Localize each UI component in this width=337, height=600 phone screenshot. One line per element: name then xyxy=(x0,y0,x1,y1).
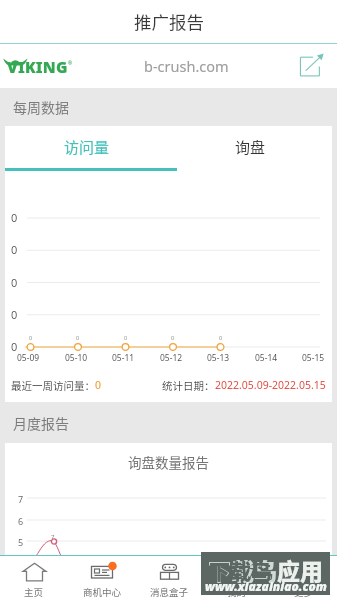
staticText: 访问量 xyxy=(64,136,110,158)
button[interactable]: 访问量 xyxy=(5,126,168,168)
staticText: 0 xyxy=(11,339,18,354)
staticText: 应用 xyxy=(277,553,323,586)
staticText: 每周数据 xyxy=(13,97,69,117)
staticText: www.xlazalniao.com xyxy=(205,578,327,594)
button[interactable]: 更多 xyxy=(270,556,337,600)
staticText: 最近一周访问量： xyxy=(11,378,95,393)
staticText: 05-13 xyxy=(207,352,230,364)
staticText: 05-15 xyxy=(302,352,325,364)
staticText: 下载鸟 xyxy=(209,555,272,585)
staticText: 6 xyxy=(18,515,24,527)
button[interactable]: 消息盒子 xyxy=(136,556,203,600)
staticText: ® xyxy=(68,60,73,67)
staticText: 05-14 xyxy=(255,352,278,364)
staticText: VIKING xyxy=(7,56,68,77)
button[interactable]: Open website xyxy=(300,55,322,77)
staticText: 0 xyxy=(171,334,175,341)
staticText: 2022.05.09-2022.05.15 xyxy=(215,378,326,392)
staticText: 商机中心 xyxy=(83,585,122,599)
staticText: 询盘数量报告 xyxy=(128,452,209,472)
button[interactable]: 主页 xyxy=(0,556,68,600)
staticText: 0 xyxy=(11,307,18,322)
staticText: 0 xyxy=(29,334,33,341)
staticText: 05-12 xyxy=(160,352,183,364)
staticText: 05-11 xyxy=(112,352,135,364)
staticText: 0 xyxy=(11,275,18,290)
button[interactable]: 询盘 xyxy=(168,126,332,168)
staticText: 消息盒子 xyxy=(150,585,189,599)
staticText: 7 xyxy=(51,533,55,541)
staticText: 05-10 xyxy=(65,352,88,364)
button[interactable]: 商机中心 xyxy=(68,556,136,600)
staticText: 0 xyxy=(76,334,80,341)
staticText: 推广报告 xyxy=(134,9,204,34)
staticText: 下载鸟 xyxy=(208,553,277,586)
staticText: 0 xyxy=(124,334,128,341)
staticText: 询盘 xyxy=(235,136,266,158)
staticText: 7 xyxy=(18,493,24,505)
staticText: 主页 xyxy=(24,585,44,599)
staticText: 05-09 xyxy=(17,352,40,364)
staticText: 5 xyxy=(18,536,24,548)
staticText: 我的 xyxy=(227,585,247,599)
staticText: 0 xyxy=(95,378,102,392)
staticText: 更多 xyxy=(294,585,314,599)
staticText: 月度报告 xyxy=(13,413,69,433)
staticText: 0 xyxy=(219,334,223,341)
button[interactable]: 我的 xyxy=(203,556,270,600)
staticText: 0 xyxy=(11,242,18,257)
staticText: 统计日期： xyxy=(162,378,215,393)
staticText: 0 xyxy=(11,210,18,225)
staticText: b-crush.com xyxy=(144,56,229,76)
